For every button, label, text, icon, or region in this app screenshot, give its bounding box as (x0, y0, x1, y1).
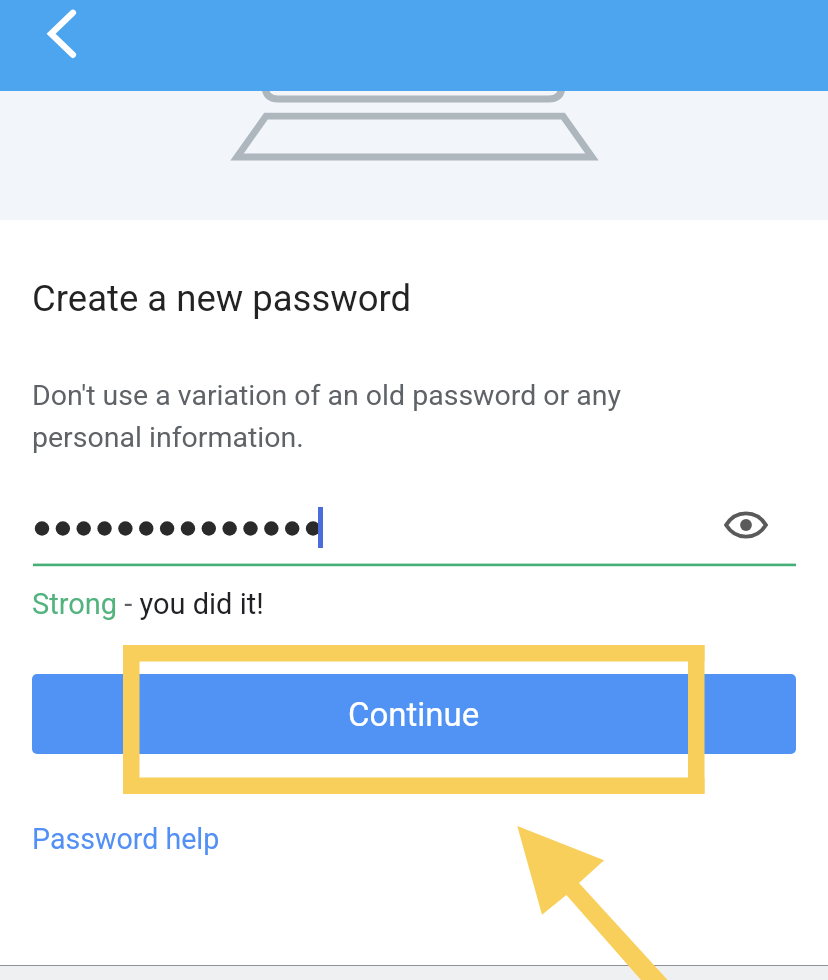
staticText: Create a new password (32, 277, 412, 320)
staticText: Don't use a variation of an old password… (32, 379, 672, 454)
staticText: Strong - you did it! (32, 587, 264, 621)
button[interactable]: Show password (711, 490, 780, 559)
staticText: Continue (348, 695, 480, 734)
button[interactable]: Continue (32, 674, 796, 754)
button[interactable]: Password (33, 495, 693, 566)
staticText: Password help (32, 822, 220, 856)
button[interactable]: Back (28, 1, 96, 69)
button[interactable]: Password help (32, 822, 220, 856)
